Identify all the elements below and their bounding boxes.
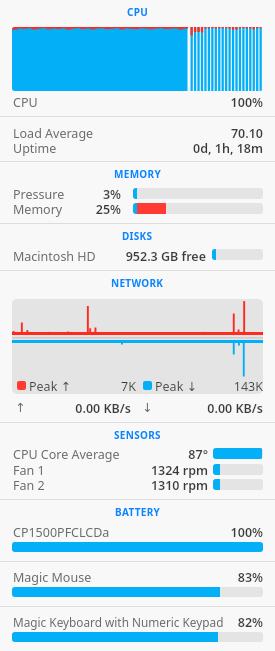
button[interactable] (12, 632, 263, 642)
staticText: 0d, 1h, 18m (193, 140, 263, 157)
button[interactable]: DISKS (0, 229, 275, 243)
button[interactable]: NETWORK (0, 276, 275, 290)
staticText: Magic Keyboard with Numeric Keypad (13, 614, 224, 630)
staticText: Magic Mouse (13, 569, 92, 586)
staticText: 952.3 GB free (125, 248, 206, 265)
button[interactable] (133, 188, 263, 199)
staticText: CPU (13, 94, 38, 111)
button[interactable] (12, 587, 263, 597)
staticText: CPU Core Average (13, 446, 120, 463)
staticText: CPU (127, 5, 149, 19)
staticText: Fan 1 (13, 462, 45, 479)
button[interactable] (213, 448, 263, 459)
staticText: 70.10 (230, 125, 263, 142)
staticText: Fan 2 (13, 477, 45, 494)
staticText: 87° (188, 446, 208, 463)
staticText: CP1500PFCLCDa (13, 524, 110, 541)
button[interactable] (133, 203, 263, 214)
staticText: 83% (237, 569, 263, 586)
button[interactable] (12, 27, 263, 91)
staticText: NETWORK (111, 276, 164, 290)
staticText: Pressure (13, 186, 65, 203)
staticText: 82% (237, 614, 263, 631)
staticText: 143K (233, 378, 263, 395)
staticText: Uptime (13, 140, 57, 157)
button[interactable] (12, 542, 263, 552)
button[interactable]: BATTERY (0, 505, 275, 519)
button[interactable]: MEMORY (0, 167, 275, 181)
staticText: Peak ↓ (155, 378, 198, 395)
button[interactable] (212, 249, 263, 260)
button[interactable]: SENSORS (0, 428, 275, 442)
staticText: BATTERY (115, 505, 161, 519)
staticText: 3% (102, 186, 121, 203)
staticText: 0.00 KB/s (207, 400, 263, 417)
staticText: DISKS (122, 229, 153, 243)
staticText: 25% (95, 201, 121, 218)
staticText: 1310 rpm (150, 477, 208, 494)
staticText: SENSORS (114, 428, 161, 442)
button[interactable] (12, 299, 263, 394)
staticText: MEMORY (114, 167, 161, 181)
staticText: 100% (230, 94, 263, 111)
staticText: Memory (13, 201, 63, 218)
staticText: 1324 rpm (150, 462, 208, 479)
button[interactable] (213, 464, 263, 475)
staticText: Peak ↑ (29, 378, 72, 395)
staticText: 100% (230, 524, 263, 541)
staticText: ↑ (15, 400, 26, 415)
button[interactable]: CPU (0, 5, 275, 19)
button[interactable] (213, 479, 263, 490)
staticText: Load Average (13, 125, 94, 142)
staticText: 0.00 KB/s (75, 400, 131, 417)
staticText: 7K (121, 378, 136, 395)
staticText: ↓ (142, 400, 153, 415)
staticText: Macintosh HD (13, 248, 96, 265)
